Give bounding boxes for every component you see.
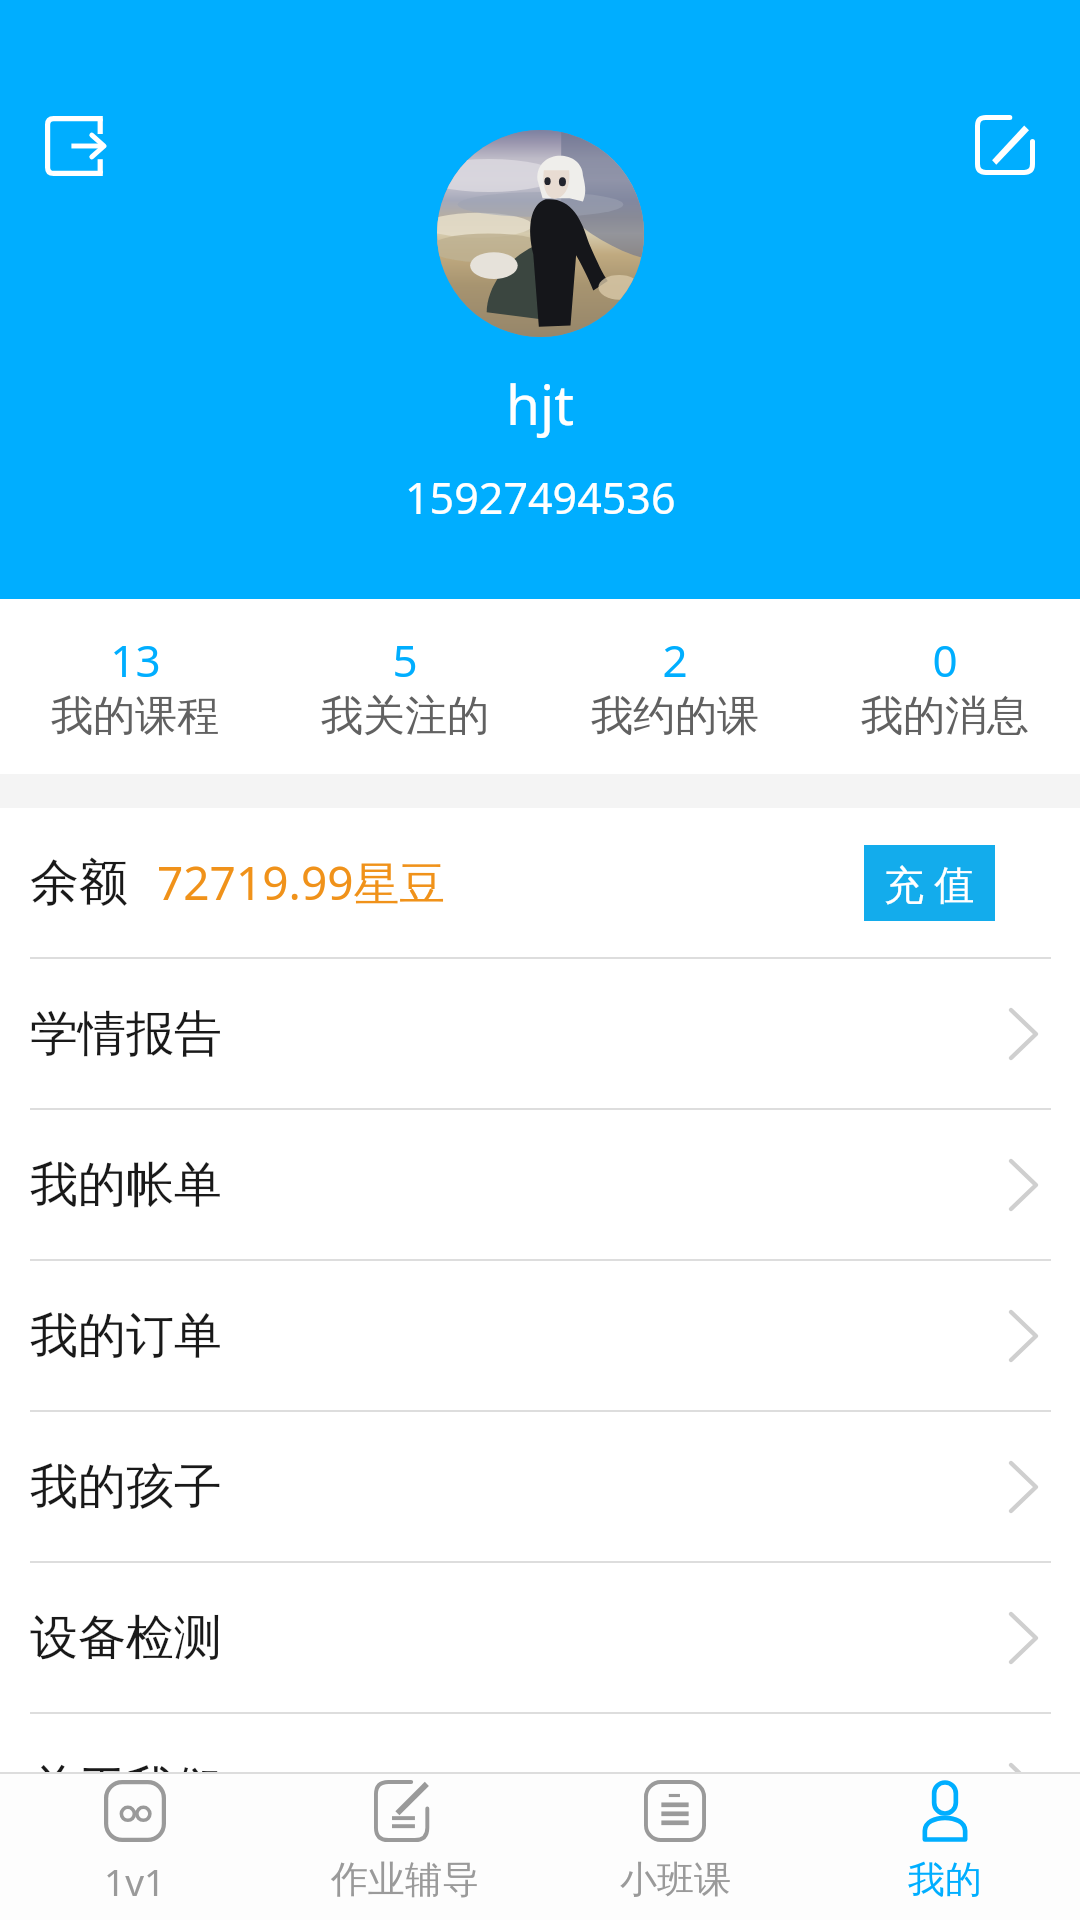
staticText: 15927494536: [405, 468, 676, 527]
button[interactable]: 1v1: [0, 1774, 270, 1920]
staticText: 我的孩子: [30, 1457, 222, 1517]
staticText: 余额: [30, 852, 128, 914]
staticText: 我的帐单: [30, 1155, 222, 1215]
button[interactable]: 小班课: [540, 1774, 810, 1920]
button[interactable]: 学情报告: [0, 959, 1080, 1108]
staticText: 0: [932, 630, 958, 690]
button[interactable]: 我的帐单: [0, 1110, 1080, 1259]
button[interactable]: 余额: [0, 808, 1080, 957]
button[interactable]: 作业辅导: [270, 1774, 540, 1920]
staticText: 72719.99星豆: [157, 851, 446, 914]
staticText: 我的课程: [51, 690, 219, 743]
staticText: 我的订单: [30, 1306, 222, 1366]
button[interactable]: 5: [270, 599, 540, 774]
staticText: 我约的课: [591, 690, 759, 743]
staticText: hjt: [506, 366, 575, 441]
staticText: 我的: [908, 1856, 982, 1903]
staticText: 关于我们: [30, 1759, 222, 1819]
button[interactable]: Logout: [45, 116, 105, 176]
button[interactable]: 我的孩子: [0, 1412, 1080, 1561]
staticText: 我关注的: [321, 690, 489, 743]
staticText: 5: [392, 630, 418, 690]
button[interactable]: 0: [810, 599, 1080, 774]
staticText: 2: [662, 630, 688, 690]
staticText: 13: [110, 630, 161, 690]
staticText: 1v1: [104, 1856, 166, 1906]
button[interactable]: 我的订单: [0, 1261, 1080, 1410]
button[interactable]: 2: [540, 599, 810, 774]
button[interactable]: 关于我们: [0, 1714, 1080, 1863]
staticText: 作业辅导: [331, 1856, 479, 1903]
button[interactable]: Edit profile: [975, 115, 1035, 175]
button[interactable]: 充 值: [864, 845, 995, 921]
staticText: 小班课: [620, 1856, 731, 1903]
staticText: 我的消息: [861, 690, 1029, 743]
staticText: 设备检测: [30, 1608, 222, 1668]
button[interactable]: 我的: [810, 1774, 1080, 1920]
staticText: 充 值: [884, 856, 975, 911]
button[interactable]: 设备检测: [0, 1563, 1080, 1712]
button[interactable]: 13: [0, 599, 270, 774]
staticText: 学情报告: [30, 1004, 222, 1064]
